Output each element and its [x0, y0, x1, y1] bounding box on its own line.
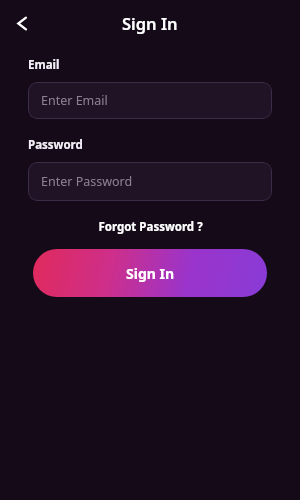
staticText: Enter Email — [41, 92, 108, 109]
staticText: Enter Password — [41, 173, 133, 190]
button[interactable]: Sign In — [33, 249, 267, 297]
staticText: Sign In — [126, 264, 175, 283]
button[interactable]: Enter Email — [28, 82, 272, 119]
button[interactable]: Enter Password — [28, 162, 272, 201]
staticText: Password — [28, 137, 83, 153]
staticText: Forgot Password ? — [98, 219, 203, 235]
staticText: Email — [28, 57, 60, 73]
button[interactable]: Back — [5, 7, 37, 39]
staticText: Sign In — [122, 12, 178, 34]
button[interactable]: Forgot Password ? — [94, 216, 207, 238]
